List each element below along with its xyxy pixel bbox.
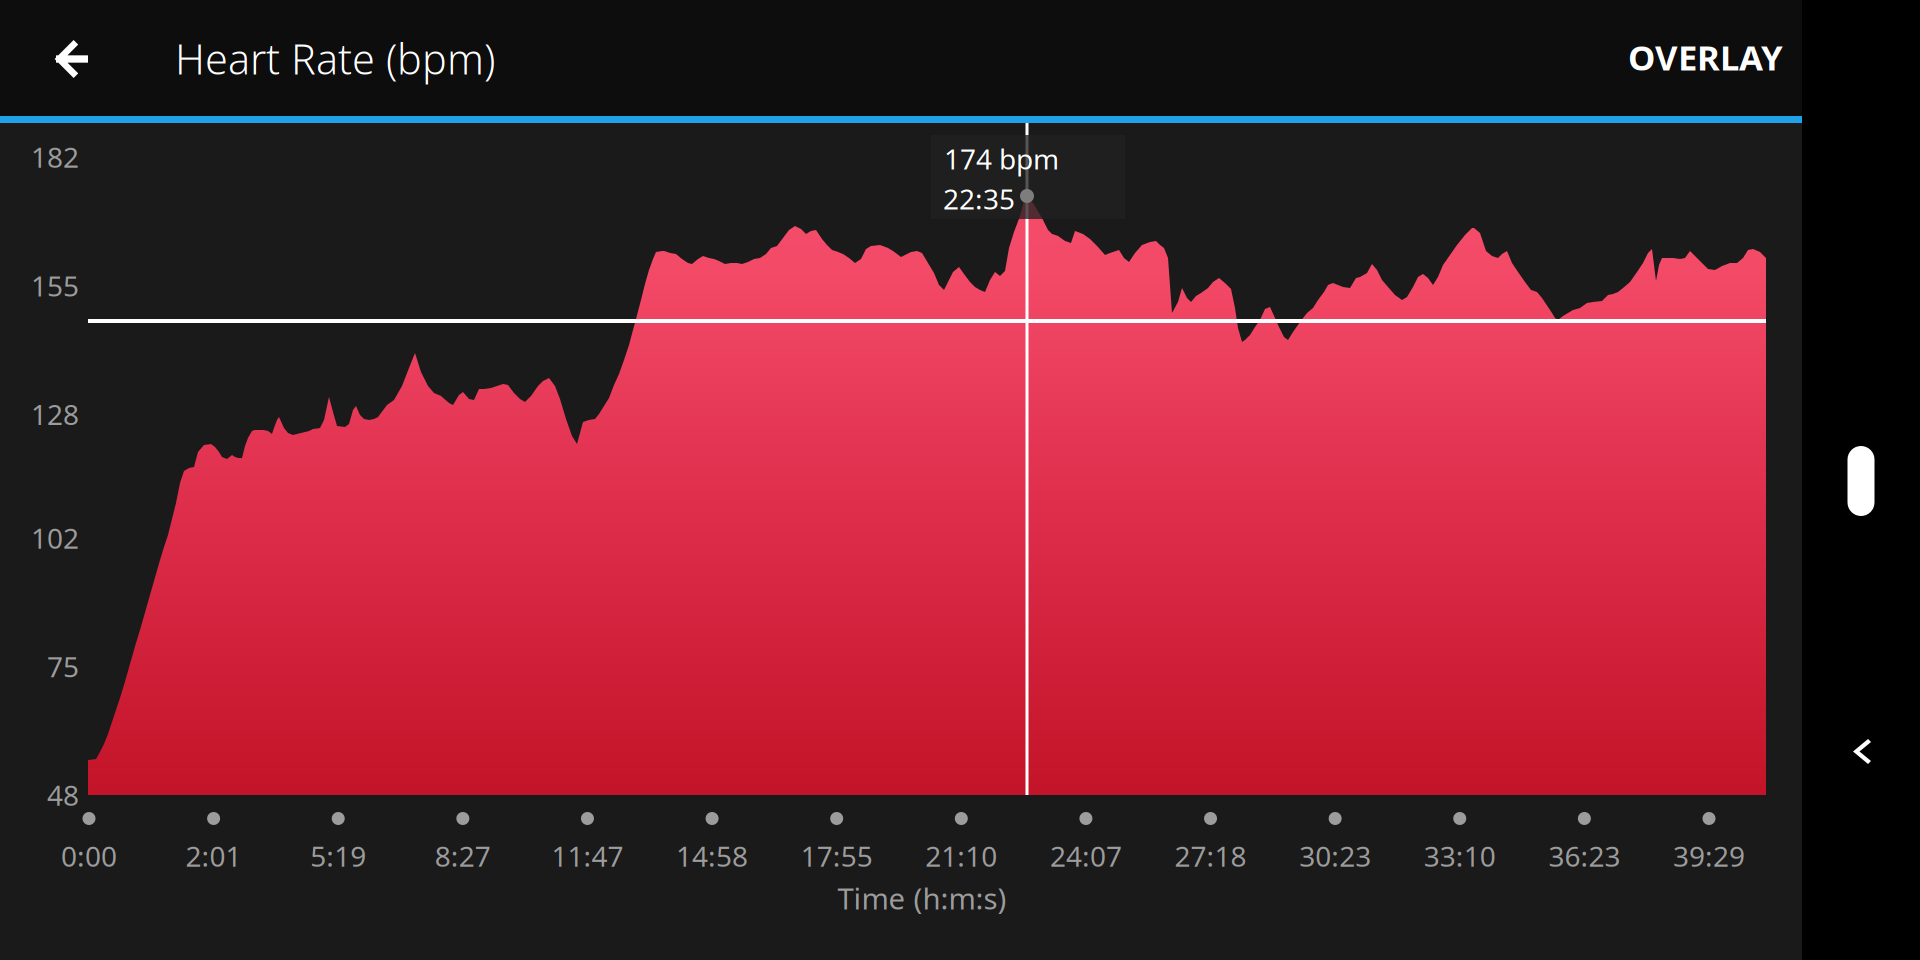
staticText: 24:07	[1050, 837, 1122, 875]
staticText: 75	[47, 648, 79, 685]
staticText: 11:47	[551, 837, 623, 875]
staticText: 182	[31, 138, 79, 176]
staticText: 30:23	[1299, 837, 1371, 875]
staticText: 155	[31, 267, 79, 304]
staticText: 36:23	[1548, 837, 1620, 875]
button[interactable]: Back	[31, 0, 141, 118]
staticText: 48	[47, 776, 79, 814]
staticText: 102	[31, 519, 79, 556]
staticText: 21:10	[925, 837, 997, 875]
staticText: 39:29	[1673, 837, 1745, 875]
staticText: 33:10	[1424, 837, 1496, 875]
staticText: Time (h:m:s)	[837, 878, 1006, 917]
staticText: 27:18	[1174, 837, 1246, 875]
staticText: Heart Rate (bpm)	[175, 31, 495, 86]
staticText: 5:19	[310, 837, 366, 875]
button[interactable]: Collapse panel	[1829, 715, 1905, 787]
button[interactable]: Resize panel	[1830, 429, 1892, 533]
staticText: 174 bpm	[944, 140, 1059, 177]
staticText: 8:27	[435, 837, 491, 875]
button[interactable]: OVERLAY	[1606, 14, 1805, 100]
staticText: 22:35	[943, 180, 1015, 217]
staticText: 0:00	[61, 837, 117, 875]
staticText: 128	[31, 395, 79, 433]
staticText: OVERLAY	[1628, 34, 1783, 80]
staticText: 17:55	[801, 837, 873, 875]
staticText: 2:01	[186, 837, 242, 875]
staticText: 14:58	[676, 837, 748, 875]
